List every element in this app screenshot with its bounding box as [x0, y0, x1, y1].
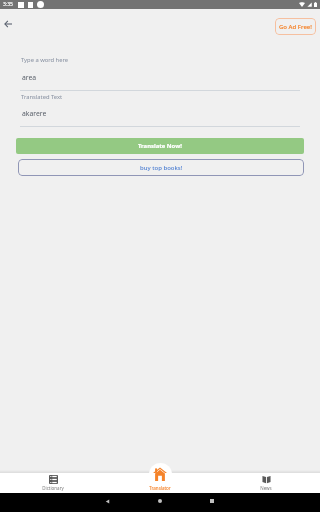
staticText: Go Ad Free!	[279, 23, 312, 31]
button[interactable]: Translate Now!	[16, 138, 304, 154]
staticText: akarere	[22, 109, 47, 118]
button[interactable]: Dictionary	[26, 473, 80, 493]
staticText: Dictionary	[42, 485, 64, 491]
button[interactable]: Home	[157, 498, 163, 504]
staticText: Translated Text	[21, 93, 63, 101]
staticText: News	[260, 485, 272, 491]
button[interactable]: Go Ad Free!	[275, 18, 316, 35]
button[interactable]: buy top books!	[18, 159, 304, 176]
staticText: Type a word here	[21, 56, 68, 64]
button[interactable]: Back	[104, 498, 110, 504]
button[interactable]: Back	[0, 14, 17, 33]
button[interactable]: Translator	[133, 463, 187, 493]
staticText: Translate Now!	[138, 142, 182, 150]
staticText: 3:35	[3, 1, 13, 8]
button[interactable]: Recents	[209, 498, 215, 504]
staticText: area	[22, 73, 37, 82]
button[interactable]: News	[239, 473, 293, 493]
staticText: buy top books!	[140, 164, 183, 172]
staticText: Translator	[149, 485, 171, 491]
